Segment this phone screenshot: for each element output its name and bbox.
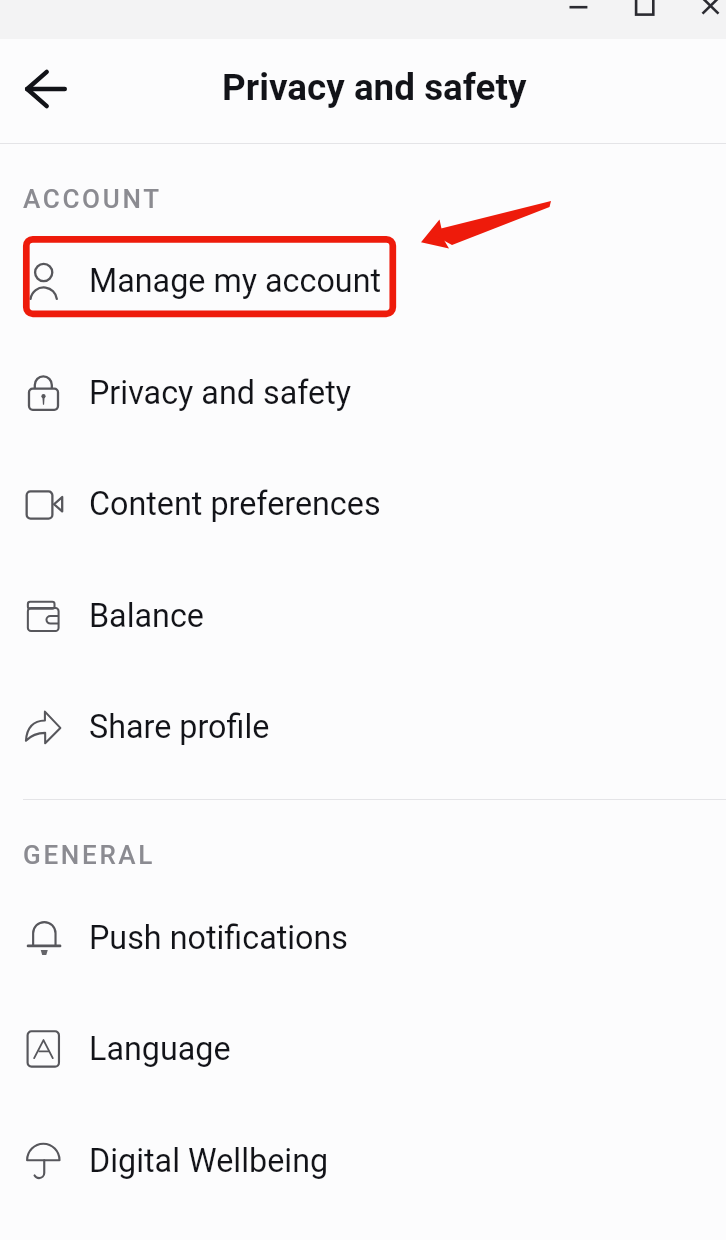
staticText: Push notifications xyxy=(89,919,349,957)
staticText: Language xyxy=(89,1030,231,1068)
button[interactable]: Privacy and safety xyxy=(0,337,726,449)
button[interactable]: Language xyxy=(0,993,726,1105)
staticText: GENERAL xyxy=(23,840,156,870)
button[interactable]: Maximize xyxy=(612,0,679,39)
staticText: Balance xyxy=(89,597,204,635)
button[interactable]: Share profile xyxy=(0,671,726,783)
button[interactable]: Digital Wellbeing xyxy=(0,1105,726,1217)
button[interactable]: Manage my account xyxy=(0,225,726,337)
staticText: Share profile xyxy=(89,708,270,746)
staticText: Manage my account xyxy=(89,262,382,300)
staticText: Privacy and safety xyxy=(89,374,352,412)
button[interactable]: Content preferences xyxy=(0,448,726,560)
button[interactable]: Back xyxy=(13,57,77,121)
button[interactable]: Close xyxy=(679,0,726,39)
staticText: ACCOUNT xyxy=(23,184,162,214)
staticText: Digital Wellbeing xyxy=(89,1142,329,1180)
staticText: Content preferences xyxy=(89,485,381,523)
staticText: Privacy and safety xyxy=(222,66,527,109)
button[interactable]: Minimize xyxy=(545,0,612,39)
button[interactable]: Balance xyxy=(0,560,726,672)
button[interactable]: Push notifications xyxy=(0,882,726,994)
